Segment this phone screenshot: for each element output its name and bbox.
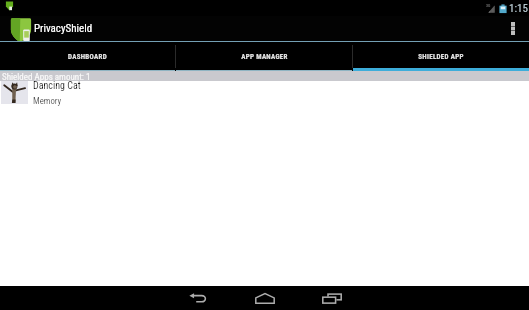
button[interactable]: APP MANAGER	[176, 42, 352, 71]
button[interactable]: More options	[499, 16, 529, 41]
staticText: DASHBOARD	[68, 53, 107, 61]
button[interactable]: DASHBOARD	[0, 42, 175, 71]
staticText: PrivacyShield	[34, 22, 93, 35]
button[interactable]: Recent apps	[312, 286, 352, 310]
button[interactable]: Home	[245, 286, 285, 310]
staticText: 3G	[486, 3, 491, 8]
staticText: Memory	[33, 96, 62, 106]
staticText: Shielded Apps amount: 1	[2, 72, 91, 82]
staticText: SHIELDED APP	[418, 53, 464, 61]
button[interactable]: SHIELDED APP	[353, 42, 529, 71]
button[interactable]: Back	[178, 286, 218, 310]
staticText: 1:15	[509, 2, 528, 15]
staticText: Dancing Cat	[33, 80, 81, 92]
staticText: APP MANAGER	[241, 53, 288, 61]
button[interactable]: Dancing Cat	[0, 81, 529, 109]
